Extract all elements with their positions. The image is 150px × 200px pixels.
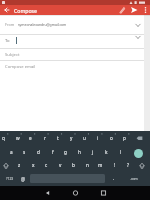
button[interactable]: w	[11, 131, 24, 144]
staticText: b	[72, 162, 75, 168]
button[interactable]: p	[118, 131, 131, 144]
button[interactable]: f	[46, 145, 59, 158]
button[interactable]	[136, 159, 148, 172]
button[interactable]	[117, 5, 127, 15]
button[interactable]	[97, 186, 110, 200]
staticText: p	[123, 135, 126, 141]
button[interactable]: ?	[121, 158, 134, 171]
staticText: n	[86, 162, 89, 168]
button[interactable]: .	[107, 171, 120, 184]
staticText: symeonalexandru@gmail.com	[18, 22, 67, 27]
staticText: f	[52, 149, 54, 155]
staticText: Compose email	[5, 64, 36, 70]
button[interactable]: b	[67, 158, 80, 171]
staticText: a	[10, 149, 13, 155]
button[interactable]: c	[40, 158, 53, 171]
staticText: e	[29, 135, 32, 141]
button[interactable]: r	[38, 131, 51, 144]
staticText: k	[105, 149, 108, 155]
staticText: v	[59, 162, 62, 168]
staticText: j	[92, 149, 94, 155]
staticText: g	[64, 149, 67, 155]
staticText: From	[5, 22, 15, 27]
button[interactable]: s	[18, 145, 31, 158]
button[interactable]	[41, 186, 54, 200]
button[interactable]: g	[59, 145, 72, 158]
button[interactable]	[2, 173, 17, 183]
staticText: h	[78, 149, 81, 155]
staticText: @	[21, 176, 26, 182]
button[interactable]: d	[32, 145, 45, 158]
button[interactable]: v	[54, 158, 67, 171]
button[interactable]: y	[65, 131, 78, 144]
button[interactable]	[0, 48, 144, 60]
staticText: u	[83, 135, 86, 141]
staticText: o	[110, 135, 113, 141]
staticText: .com	[130, 176, 138, 181]
button[interactable]	[129, 5, 139, 15]
staticText: l	[120, 149, 122, 155]
staticText: Compose	[14, 7, 38, 14]
staticText: c	[45, 162, 48, 168]
staticText: Subject	[5, 52, 20, 58]
staticText: s	[23, 149, 26, 155]
button[interactable]	[133, 132, 149, 145]
staticText: x	[32, 162, 35, 168]
button[interactable]	[69, 186, 82, 200]
button[interactable]	[0, 159, 12, 172]
staticText: !	[114, 162, 116, 168]
button[interactable]: h	[73, 145, 86, 158]
button[interactable]: j	[86, 145, 99, 158]
staticText: d	[37, 149, 40, 155]
staticText: y	[70, 135, 73, 141]
button[interactable]	[134, 149, 143, 158]
button[interactable]: x	[27, 158, 40, 171]
button[interactable]: l	[114, 145, 127, 158]
staticText: w	[16, 135, 20, 141]
button[interactable]: e	[24, 131, 37, 144]
button[interactable]	[0, 60, 144, 131]
button[interactable]	[2, 5, 12, 15]
button[interactable]: q	[0, 131, 10, 144]
button[interactable]: !	[108, 158, 121, 171]
button[interactable]: t	[51, 131, 64, 144]
button[interactable]: k	[100, 145, 113, 158]
button[interactable]	[0, 15, 144, 34]
button[interactable]: @	[17, 172, 30, 185]
button[interactable]	[0, 34, 144, 48]
button[interactable]: n	[81, 158, 94, 171]
staticText: r	[44, 135, 46, 141]
button[interactable]	[141, 5, 150, 15]
button[interactable]: u	[78, 131, 91, 144]
button[interactable]: z	[13, 158, 26, 171]
staticText: z	[18, 162, 21, 168]
button[interactable]: i	[91, 131, 104, 144]
staticText: q	[2, 135, 5, 141]
staticText: .	[113, 175, 115, 181]
staticText: ?	[127, 162, 129, 168]
button[interactable]	[124, 173, 143, 183]
staticText: t	[57, 135, 59, 141]
button[interactable]: a	[5, 145, 18, 158]
staticText: i	[97, 135, 99, 141]
staticText: m	[98, 162, 103, 168]
staticText: To	[5, 38, 10, 44]
staticText: ?123	[6, 176, 14, 181]
button[interactable]: m	[94, 158, 107, 171]
button[interactable]: o	[105, 131, 118, 144]
